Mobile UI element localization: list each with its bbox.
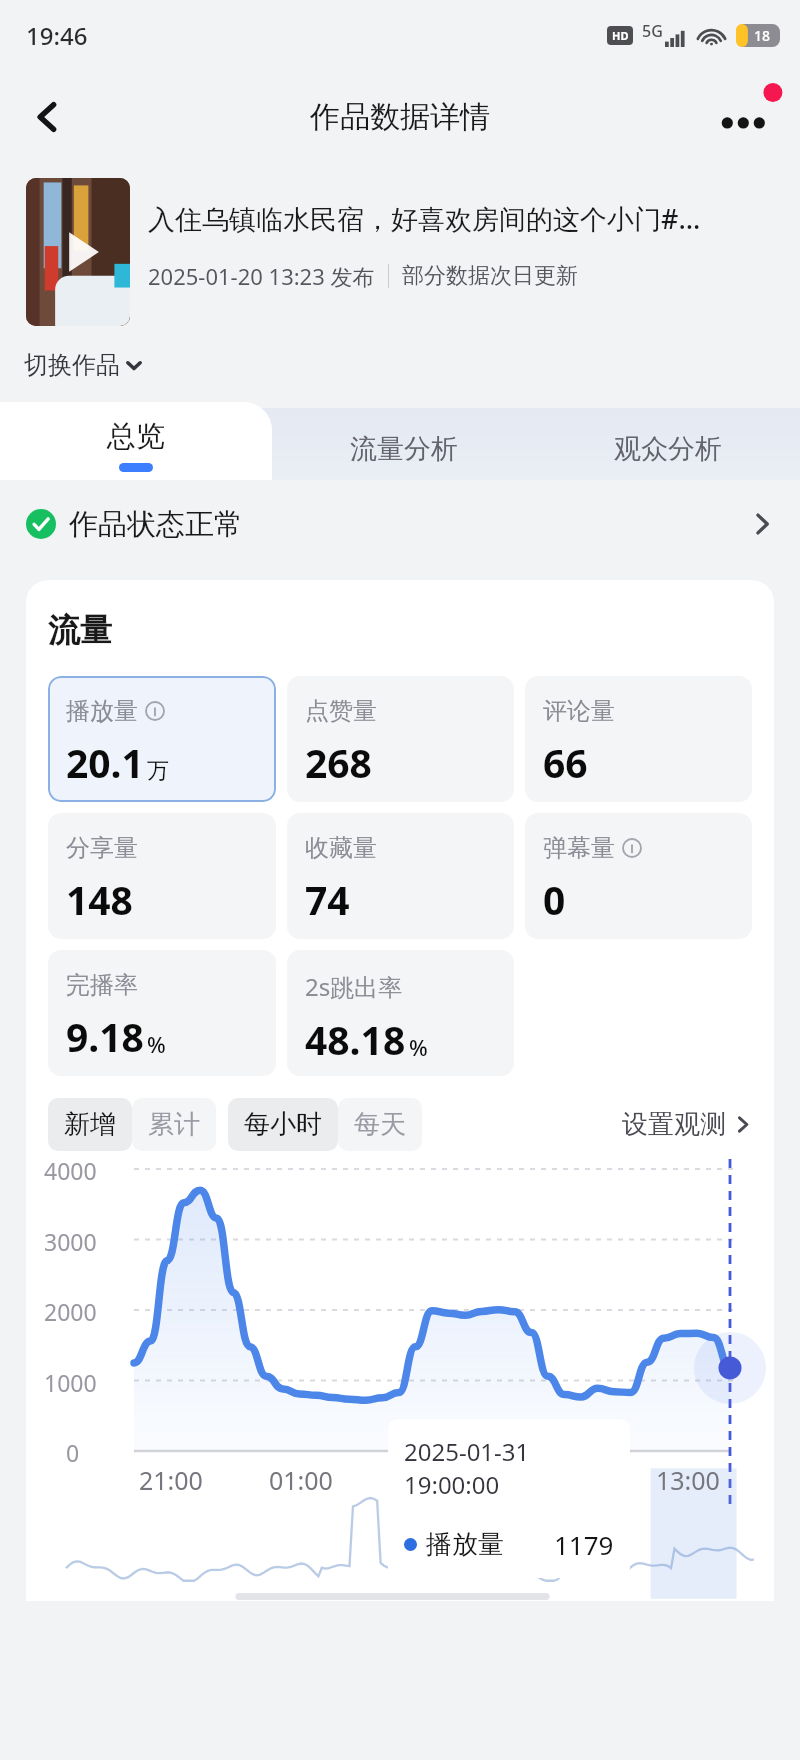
staticText: 流量分析 <box>350 432 458 466</box>
staticText: % <box>147 1029 166 1059</box>
staticText: 每小时 <box>244 1108 322 1141</box>
button[interactable]: 每天 <box>338 1098 422 1151</box>
staticText: 18 <box>754 26 771 45</box>
button[interactable]: 完播率 <box>48 950 276 1076</box>
button[interactable]: 作品状态正常 <box>26 480 774 568</box>
staticText: 万 <box>147 757 169 785</box>
staticText: 入住乌镇临水民宿，好喜欢房间的这个小门#… <box>148 200 701 237</box>
staticText: 部分数据次日更新 <box>402 262 578 290</box>
staticText: 0 <box>543 873 566 926</box>
button[interactable]: 新增 <box>48 1098 132 1151</box>
staticText: 播放量 <box>66 696 138 726</box>
staticText: 设置观测 <box>622 1108 726 1141</box>
staticText: 148 <box>66 873 133 926</box>
staticText: 3000 <box>44 1226 97 1257</box>
staticText: 分享量 <box>66 833 138 863</box>
button[interactable]: Back <box>16 85 80 149</box>
staticText: 1000 <box>44 1367 97 1398</box>
staticText: 累计 <box>148 1108 200 1141</box>
staticText: 13:00 <box>656 1463 720 1497</box>
staticText: 1179 <box>554 1527 614 1562</box>
button[interactable] <box>26 178 130 326</box>
staticText: 切换作品 <box>24 350 120 380</box>
staticText: 01:00 <box>269 1463 333 1497</box>
button[interactable]: 收藏量 <box>287 813 514 939</box>
staticText: 观众分析 <box>614 432 722 466</box>
staticText: 4000 <box>44 1155 97 1186</box>
button[interactable]: 切换作品 <box>24 350 145 380</box>
staticText: 05:00 <box>398 1463 462 1497</box>
button[interactable]: 弹幕量 <box>525 813 752 939</box>
staticText: 19:46 <box>26 19 88 52</box>
staticText: 0 <box>66 1437 80 1468</box>
staticText: 收藏量 <box>305 833 377 863</box>
staticText: 完播率 <box>66 970 138 1000</box>
staticText: 总览 <box>107 418 165 455</box>
button[interactable]: 流量分析 <box>272 402 536 480</box>
staticText: 48.18 <box>305 1013 406 1066</box>
button[interactable]: 播放量 <box>48 676 276 802</box>
staticText: 作品数据详情 <box>310 98 490 136</box>
staticText: 弹幕量 <box>543 833 615 863</box>
staticText: 作品状态正常 <box>69 506 243 543</box>
staticText: 9.18 <box>66 1010 144 1063</box>
staticText: 66 <box>543 736 588 789</box>
button[interactable]: 2s跳出率 <box>287 950 514 1076</box>
button[interactable]: More options <box>710 80 784 154</box>
staticText: 流量 <box>48 610 112 650</box>
staticText: 播放量 <box>426 1528 504 1561</box>
staticText: 20.1 <box>66 736 144 789</box>
staticText: 268 <box>305 736 372 789</box>
button[interactable]: 每小时 <box>228 1098 338 1151</box>
staticText: HD <box>612 28 629 43</box>
staticText: 5G <box>642 20 663 42</box>
button[interactable]: 评论量 <box>525 676 752 802</box>
button[interactable]: 总览 <box>0 402 272 480</box>
staticText: 2025-01-20 13:23 发布 <box>148 261 375 291</box>
staticText: 2s跳出率 <box>305 970 403 1003</box>
staticText: 新增 <box>64 1108 116 1141</box>
staticText: 2025-01-31 19:00:00 <box>404 1435 614 1501</box>
staticText: 点赞量 <box>305 696 377 726</box>
staticText: 2000 <box>44 1296 97 1327</box>
staticText: % <box>409 1032 428 1062</box>
button[interactable]: 分享量 <box>48 813 276 939</box>
staticText: 评论量 <box>543 696 615 726</box>
staticText: 每天 <box>354 1108 406 1141</box>
button[interactable]: 点赞量 <box>287 676 514 802</box>
staticText: 21:00 <box>139 1463 203 1497</box>
button[interactable]: 观众分析 <box>536 402 800 480</box>
button[interactable]: 累计 <box>132 1098 216 1151</box>
button[interactable]: 设置观测 <box>622 1108 752 1141</box>
staticText: 74 <box>305 873 350 926</box>
